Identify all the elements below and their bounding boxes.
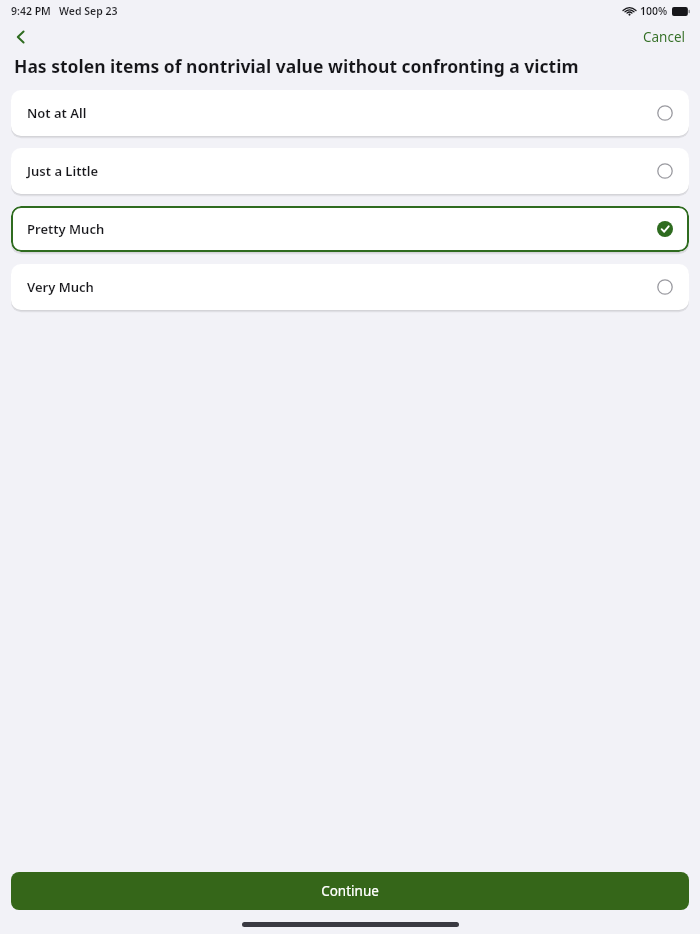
button[interactable]: Continue	[11, 872, 689, 910]
staticText: 9:42 PM	[11, 4, 51, 18]
button[interactable]: Back	[4, 22, 38, 52]
staticText: Cancel	[643, 28, 686, 46]
button[interactable]: Pretty Much	[11, 206, 689, 252]
staticText: Just a Little	[27, 162, 98, 180]
staticText: Continue	[321, 882, 379, 900]
staticText: 100%	[640, 4, 668, 18]
staticText: Not at All	[27, 104, 87, 122]
staticText: Wed Sep 23	[59, 4, 118, 18]
button[interactable]: Very Much	[11, 264, 689, 310]
button[interactable]: Not at All	[11, 90, 689, 136]
button[interactable]: Just a Little	[11, 148, 689, 194]
staticText: Pretty Much	[27, 220, 105, 238]
staticText: Very Much	[27, 278, 94, 296]
staticText: Has stolen items of nontrivial value wit…	[14, 54, 579, 78]
button[interactable]: Cancel	[629, 24, 700, 50]
